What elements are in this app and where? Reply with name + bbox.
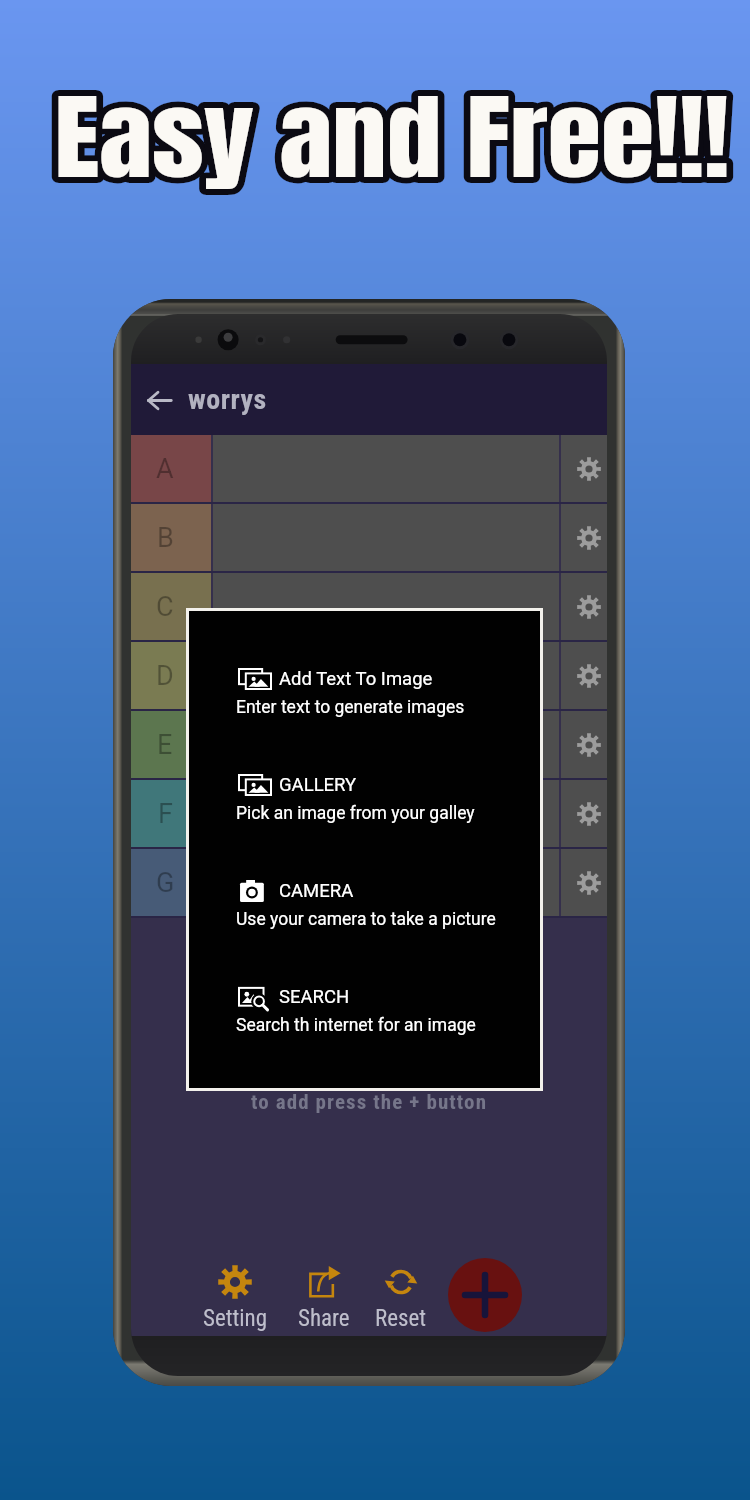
staticText: Share [298,1305,350,1332]
button[interactable]: G [131,849,607,916]
staticText: Easy and Free!!! [54,66,729,208]
button[interactable]: Reset [361,1246,441,1336]
button[interactable]: Settings [561,573,607,640]
staticText: Pick an image from your galley [236,803,475,824]
button[interactable]: Add Text To Image [236,668,540,718]
button[interactable]: Share [284,1246,364,1336]
button[interactable]: Settings [561,504,607,571]
button[interactable]: Back [137,378,181,422]
staticText: E [157,729,173,761]
staticText: G [156,867,175,899]
button[interactable]: Setting [195,1246,275,1336]
staticText: D [156,660,174,692]
staticText: Add Text To Image [279,668,433,690]
staticText: Easy and Free!!! [54,66,729,208]
button[interactable]: A [131,435,607,502]
button[interactable]: Settings [561,849,607,916]
button[interactable]: Add [448,1258,522,1332]
button[interactable]: C [131,573,607,640]
staticText: Search th internet for an image [236,1015,476,1036]
staticText: A [156,453,174,485]
staticText: Enter text to generate images [236,697,465,718]
button[interactable]: CAMERA [236,880,540,930]
button[interactable]: Settings [561,435,607,502]
button[interactable]: F [131,780,607,847]
staticText: worrys [188,383,267,416]
button[interactable]: B [131,504,607,571]
staticText: B [157,522,174,554]
staticText: Use your camera to take a picture [236,909,496,930]
button[interactable]: GALLERY [236,774,540,824]
staticText: Reset [375,1305,427,1332]
button[interactable]: SEARCH [236,986,540,1036]
button[interactable]: D [131,642,607,709]
button[interactable]: Settings [561,642,607,709]
staticText: F [158,798,173,830]
button[interactable]: Settings [561,711,607,778]
button[interactable]: Settings [561,780,607,847]
button[interactable]: E [131,711,607,778]
staticText: to add press the + button [131,1090,607,1115]
staticText: GALLERY [279,774,357,796]
staticText: CAMERA [279,880,354,902]
staticText: C [156,591,174,623]
staticText: Setting [203,1305,268,1332]
staticText: SEARCH [279,986,350,1008]
